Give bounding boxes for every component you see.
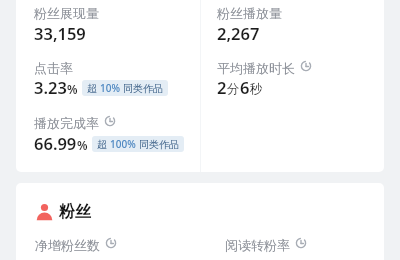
staticText: 超 (97, 138, 107, 151)
staticText: 播放完成率 (34, 115, 99, 131)
other: Fans (37, 204, 52, 221)
other: More info (295, 237, 307, 249)
staticText: % (77, 137, 88, 153)
staticText: 66.99 (34, 132, 77, 154)
staticText: 同类作品 (139, 138, 179, 151)
staticText: 6 (240, 76, 250, 98)
staticText: 粉丝播放量 (217, 5, 282, 21)
button[interactable]: 超 (82, 80, 168, 96)
staticText: 秒 (250, 81, 263, 97)
staticText: % (67, 81, 78, 97)
staticText: 33,159 (34, 22, 86, 44)
staticText: 2 (217, 76, 227, 98)
button[interactable]: 净增粉丝数 (35, 237, 117, 253)
button[interactable]: Fans (37, 202, 91, 222)
staticText: 净增粉丝数 (35, 237, 100, 253)
button[interactable]: 粉丝播放量 (217, 5, 282, 21)
staticText: 阅读转粉率 (225, 237, 290, 253)
other: More info (105, 237, 117, 249)
staticText: 平均播放时长 (217, 60, 295, 76)
other: More info (300, 60, 312, 72)
button[interactable]: 平均播放时长 (217, 60, 312, 76)
staticText: 分 (227, 81, 240, 97)
button[interactable]: 阅读转粉率 (225, 237, 307, 253)
staticText: 同类作品 (123, 82, 163, 95)
staticText: 粉丝展现量 (34, 5, 99, 21)
staticText: 点击率 (34, 60, 73, 76)
button[interactable]: 播放完成率 (34, 115, 116, 131)
staticText: 2,267 (217, 22, 260, 44)
staticText: 粉丝 (59, 202, 91, 222)
staticText: 10% (100, 81, 120, 95)
button[interactable]: 点击率 (34, 60, 73, 76)
staticText: 超 (87, 82, 97, 95)
staticText: 100% (110, 137, 136, 151)
other: More info (104, 115, 116, 127)
button[interactable]: 超 (92, 136, 184, 152)
button[interactable]: 粉丝展现量 (34, 5, 99, 21)
staticText: 3.23 (34, 76, 67, 98)
